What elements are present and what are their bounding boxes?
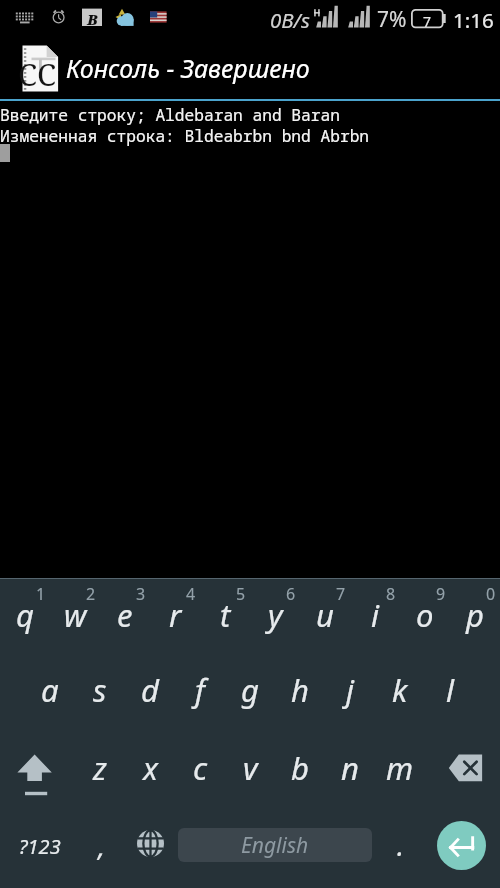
button[interactable]: Change keyboard language — [124, 807, 176, 888]
staticText: z — [93, 747, 107, 789]
button[interactable]: 0 — [450, 579, 500, 654]
button[interactable]: d — [125, 654, 175, 730]
button[interactable]: 4 — [150, 579, 200, 654]
button[interactable]: k — [375, 654, 425, 730]
staticText: r — [169, 594, 182, 636]
staticText: i — [371, 594, 379, 636]
staticText: g — [241, 669, 259, 711]
button[interactable]: ?123 — [0, 807, 78, 888]
staticText: 0B/s — [270, 6, 310, 34]
staticText: 3 — [136, 583, 146, 605]
button[interactable]: n — [325, 730, 375, 807]
staticText: 7 — [423, 12, 432, 31]
button[interactable]: l — [425, 654, 475, 730]
staticText: u — [316, 594, 334, 636]
button[interactable]: 7 — [300, 579, 350, 654]
button[interactable]: CC — [0, 35, 500, 99]
button[interactable]: f — [175, 654, 225, 730]
button[interactable]: s — [75, 654, 125, 730]
staticText: CC — [18, 53, 57, 95]
button[interactable]: b — [275, 730, 325, 807]
staticText: m — [386, 747, 414, 789]
button[interactable]: 3 — [100, 579, 150, 654]
button[interactable]: m — [375, 730, 425, 807]
staticText: 0 — [486, 583, 496, 605]
button[interactable]: 2 — [50, 579, 100, 654]
button[interactable]: z — [75, 730, 125, 807]
button[interactable]: x — [125, 730, 175, 807]
staticText: ?123 — [19, 833, 61, 860]
staticText: v — [243, 747, 258, 789]
staticText: 9 — [436, 583, 446, 605]
button[interactable]: j — [325, 654, 375, 730]
staticText: English — [241, 831, 309, 860]
button[interactable]: 8 — [350, 579, 400, 654]
staticText: q — [16, 594, 34, 636]
staticText: 1:16 — [453, 6, 494, 34]
staticText: n — [341, 747, 359, 789]
staticText: w — [64, 594, 87, 636]
staticText: b — [291, 747, 309, 789]
button[interactable]: g — [225, 654, 275, 730]
button[interactable]: v — [225, 730, 275, 807]
staticText: Консоль - Завершено — [66, 51, 310, 85]
staticText: , — [98, 827, 105, 864]
staticText: Введите строку; Aldebaran and Baran Изме… — [0, 104, 370, 146]
staticText: 8 — [386, 583, 396, 605]
staticText: h — [291, 669, 309, 711]
button[interactable]: Shift — [0, 730, 70, 807]
button[interactable]: 5 — [200, 579, 250, 654]
button[interactable]: , — [78, 807, 124, 888]
staticText: t — [220, 594, 231, 636]
button[interactable]: Backspace — [430, 730, 500, 807]
staticText: 2 — [86, 583, 96, 605]
staticText: 4 — [186, 583, 196, 605]
button[interactable]: a — [25, 654, 75, 730]
staticText: d — [141, 669, 159, 711]
staticText: o — [416, 594, 434, 636]
staticText: j — [346, 669, 354, 711]
staticText: . — [397, 827, 404, 864]
staticText: k — [392, 669, 408, 711]
staticText: B — [87, 9, 98, 29]
button[interactable]: English — [178, 828, 372, 862]
staticText: a — [41, 669, 59, 711]
button[interactable]: 9 — [400, 579, 450, 654]
staticText: l — [446, 669, 454, 711]
staticText: y — [268, 594, 283, 636]
staticText: x — [143, 747, 158, 789]
button[interactable]: h — [275, 654, 325, 730]
button[interactable]: 6 — [250, 579, 300, 654]
staticText: 5 — [236, 583, 246, 605]
staticText: 1 — [36, 583, 46, 605]
button[interactable]: Enter — [423, 807, 500, 888]
staticText: s — [93, 669, 107, 711]
staticText: p — [466, 594, 484, 636]
staticText: e — [117, 594, 133, 636]
staticText: 7% — [377, 5, 407, 34]
staticText: 7 — [336, 583, 346, 605]
staticText: 6 — [286, 583, 296, 605]
button[interactable]: . — [376, 807, 423, 888]
staticText: f — [195, 669, 205, 711]
staticText: c — [193, 747, 208, 789]
button[interactable]: 1 — [0, 579, 50, 654]
button[interactable]: c — [175, 730, 225, 807]
